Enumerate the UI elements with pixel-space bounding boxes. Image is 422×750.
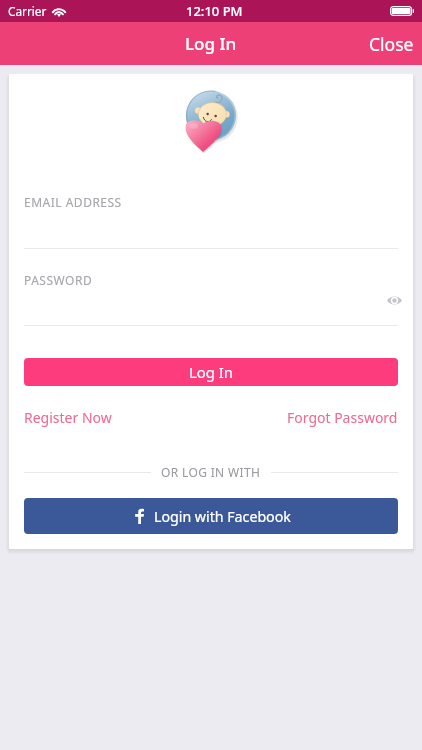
button[interactable]: Forgot Password	[287, 408, 398, 427]
button[interactable]: Register Now	[24, 408, 112, 427]
staticText: Register Now	[24, 408, 112, 427]
staticText: 12:10 PM	[186, 2, 243, 20]
staticText: Login with Facebook	[154, 507, 291, 526]
button[interactable]: Login with Facebook	[24, 498, 398, 534]
button[interactable]: Close	[357, 22, 422, 65]
staticText: Log In	[189, 362, 233, 382]
staticText: Carrier	[8, 3, 47, 19]
staticText: Forgot Password	[287, 408, 398, 427]
staticText: PASSWORD	[24, 272, 93, 288]
staticText: Log In	[185, 32, 237, 55]
button[interactable]: Show password	[383, 289, 405, 311]
button[interactable]: Log In	[24, 358, 398, 386]
staticText: Close	[369, 32, 414, 56]
staticText: EMAIL ADDRESS	[24, 194, 122, 210]
staticText: OR LOG IN WITH	[161, 464, 261, 480]
